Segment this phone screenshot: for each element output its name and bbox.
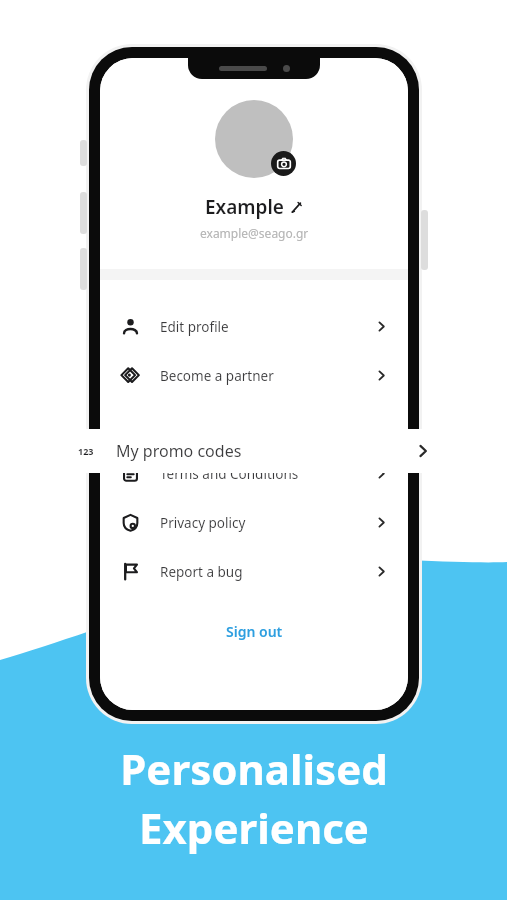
button[interactable]: Privacy policy [100, 498, 408, 547]
button[interactable]: 123 [54, 429, 453, 473]
staticText: 123 [78, 445, 94, 457]
staticText: Become a partner [160, 367, 274, 385]
staticText: Terms and Conditions [160, 465, 299, 483]
button[interactable]: Report a bug [100, 547, 408, 596]
button[interactable]: Terms and Conditions [100, 449, 408, 498]
staticText: Example [205, 194, 284, 220]
button[interactable]: Edit profile [100, 302, 408, 351]
staticText: Experience [139, 799, 369, 856]
staticText: example@seago.gr [200, 225, 309, 241]
button[interactable]: Example [205, 194, 303, 220]
button[interactable]: Sign out [208, 616, 301, 647]
staticText: Sign out [226, 622, 283, 641]
staticText: Personalised [120, 740, 388, 797]
staticText: Edit profile [160, 318, 229, 336]
staticText: Report a bug [160, 563, 243, 581]
button[interactable]: Become a partner [100, 351, 408, 400]
staticText: Privacy policy [160, 514, 246, 532]
button[interactable]: Change profile photo [271, 151, 296, 176]
staticText: My promo codes [116, 440, 242, 462]
